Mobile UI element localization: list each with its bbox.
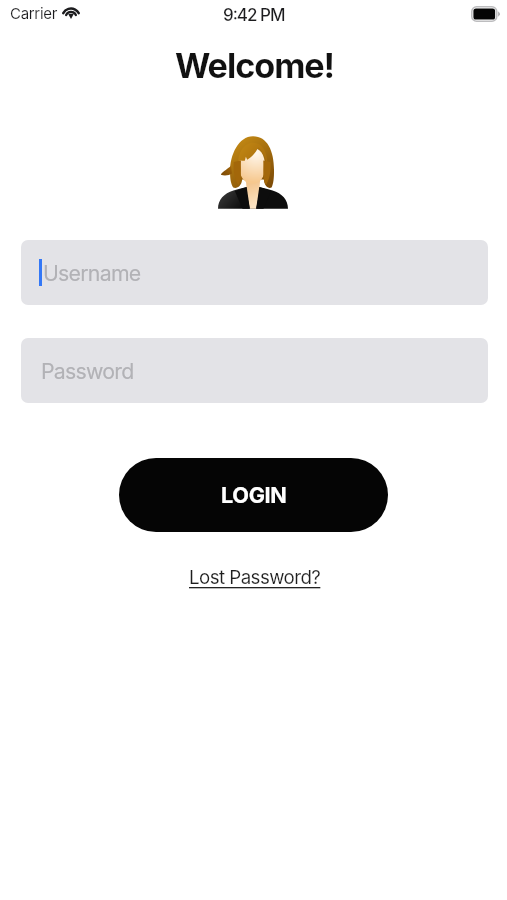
- button[interactable]: Username: [21, 240, 488, 305]
- other: Wi-Fi signal: [61, 3, 81, 17]
- staticText: Welcome!: [1, 45, 507, 86]
- staticText: Carrier: [10, 4, 58, 22]
- other: Battery full: [471, 6, 500, 22]
- staticText: Lost Password?: [189, 566, 321, 589]
- button[interactable]: LOGIN: [119, 458, 388, 532]
- other: User avatar: [218, 134, 288, 210]
- staticText: Username: [43, 260, 141, 286]
- staticText: 9:42 PM: [223, 5, 285, 26]
- button[interactable]: Lost Password?: [179, 561, 331, 594]
- staticText: LOGIN: [221, 482, 287, 508]
- button[interactable]: Password: [21, 338, 488, 403]
- staticText: Password: [41, 358, 134, 384]
